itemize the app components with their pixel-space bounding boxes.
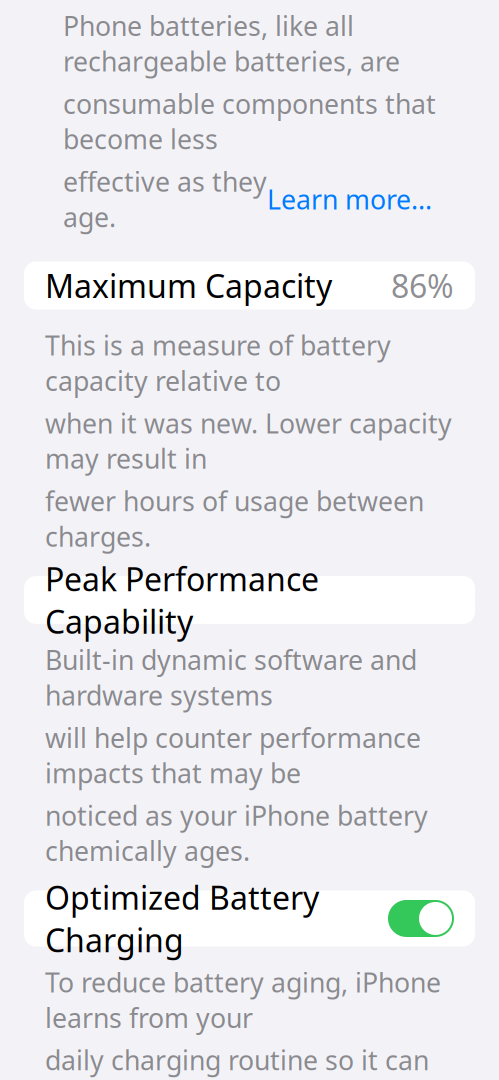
staticText: consumable components that become less (63, 86, 436, 157)
button[interactable]: Optimized Battery Charging (388, 900, 454, 937)
staticText: daily charging routine so it can wait to… (45, 1042, 429, 1080)
staticText: Built-in dynamic software and hardware s… (45, 642, 417, 713)
staticText: Learn more... (267, 181, 432, 217)
staticText: fewer hours of usage between charges. (45, 483, 424, 554)
staticText: when it was new. Lower capacity may resu… (45, 405, 452, 476)
staticText: To reduce battery aging, iPhone learns f… (45, 964, 441, 1035)
staticText: Maximum Capacity (45, 264, 332, 307)
button[interactable]: Peak Performance Capability (0, 576, 499, 624)
button[interactable]: Learn more... (267, 181, 432, 217)
staticText: Optimized Battery Charging (45, 876, 319, 961)
staticText: Phone batteries, like all rechargeable b… (63, 8, 400, 79)
staticText: noticed as your iPhone battery chemicall… (45, 798, 428, 868)
staticText: Peak Performance Capability (45, 557, 319, 642)
staticText: This is a measure of battery capacity re… (45, 327, 391, 398)
staticText: effective as they age. (63, 164, 267, 234)
staticText: 86% (391, 264, 454, 307)
staticText: will help counter performance impacts th… (45, 720, 421, 791)
